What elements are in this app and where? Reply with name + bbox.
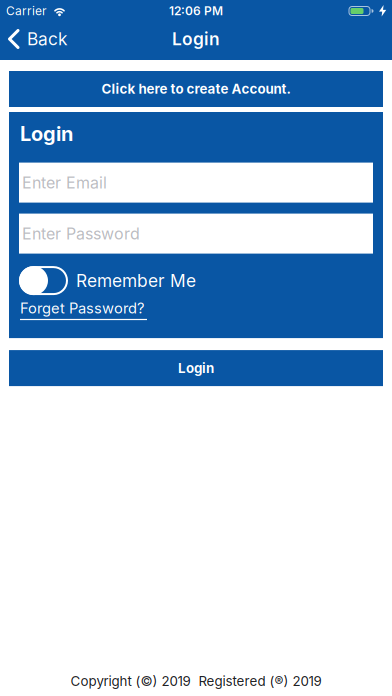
button[interactable]: Forget Password? (20, 300, 147, 320)
staticText: Enter Email (22, 173, 107, 192)
button[interactable]: Click here to create Account. (9, 71, 383, 107)
staticText: Back (27, 29, 68, 49)
staticText: Login (172, 29, 220, 49)
staticText: Enter Password (22, 224, 140, 243)
staticText: Login (178, 360, 214, 376)
button[interactable]: Remember Me (19, 266, 68, 296)
button[interactable]: Back (8, 29, 68, 49)
staticText: 12:06 PM (169, 4, 223, 18)
staticText: Forget Password? (20, 300, 144, 317)
staticText: Remember Me (76, 270, 196, 291)
staticText: Login (20, 122, 73, 146)
button[interactable]: Login (9, 350, 383, 386)
staticText: Copyright (©) 2019 Registered (®) 2019 (70, 673, 321, 689)
staticText: Click here to create Account. (101, 81, 290, 97)
staticText: Carrier (6, 4, 47, 18)
